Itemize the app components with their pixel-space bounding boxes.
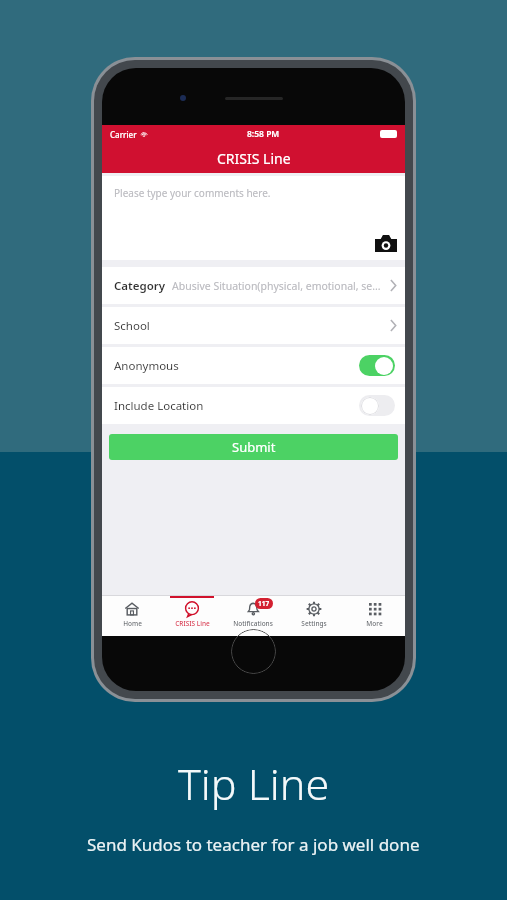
- staticText: Submit: [232, 438, 276, 456]
- button[interactable]: Settings: [283, 596, 344, 636]
- button[interactable]: Home: [102, 596, 162, 636]
- staticText: Home: [123, 619, 142, 628]
- staticText: Abusive Situation(physical, emotional, s…: [172, 279, 386, 293]
- staticText: Tip Line: [178, 754, 330, 813]
- staticText: Carrier: [110, 129, 137, 140]
- button[interactable]: Submit: [109, 434, 398, 460]
- button[interactable]: Include Location: [102, 387, 405, 424]
- staticText: 8:58 PM: [247, 128, 280, 140]
- button[interactable]: More: [344, 596, 405, 636]
- staticText: Anonymous: [114, 358, 179, 374]
- button[interactable]: 117: [222, 596, 283, 636]
- button[interactable]: Category: [102, 267, 405, 304]
- staticText: Please type your comments here.: [114, 186, 271, 200]
- button[interactable]: Anonymous: [102, 347, 405, 384]
- staticText: More: [366, 619, 383, 628]
- staticText: Notifications: [233, 619, 273, 628]
- staticText: CRISIS Line: [217, 149, 291, 168]
- staticText: Include Location: [114, 398, 204, 414]
- staticText: School: [114, 318, 150, 334]
- staticText: CRISIS Line: [175, 619, 210, 628]
- staticText: Settings: [301, 619, 327, 628]
- button[interactable]: School: [102, 307, 405, 344]
- button[interactable]: Attach photo: [373, 230, 399, 256]
- staticText: Send Kudos to teacher for a job well don…: [87, 833, 420, 856]
- staticText: Category: [114, 278, 166, 294]
- button[interactable]: CRISIS Line: [162, 596, 222, 636]
- staticText: 117: [258, 599, 270, 608]
